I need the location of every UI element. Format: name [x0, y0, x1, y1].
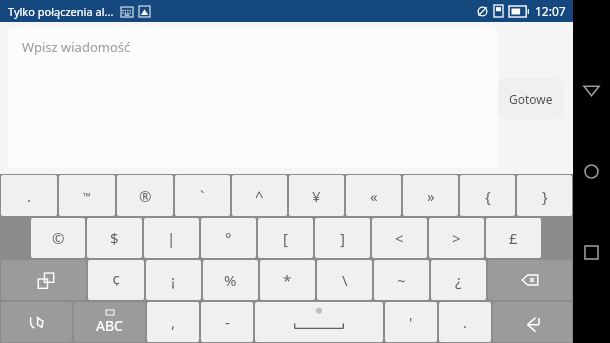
staticText: £	[509, 228, 518, 248]
button[interactable]: Back	[573, 72, 610, 109]
button[interactable]: Wpisz wiadomość	[8, 27, 498, 168]
button[interactable]: Home	[573, 153, 610, 190]
staticText: ®	[139, 186, 152, 206]
button[interactable]: [	[258, 218, 313, 258]
staticText: »	[427, 186, 435, 206]
button[interactable]: Enter	[493, 302, 572, 342]
button[interactable]: ¡	[146, 260, 201, 300]
staticText: `	[200, 186, 205, 206]
button[interactable]: .	[1, 175, 57, 216]
button[interactable]: $	[87, 218, 142, 258]
staticText: ABC	[96, 316, 123, 335]
staticText: °	[225, 228, 232, 248]
button[interactable]: '	[385, 302, 437, 342]
button[interactable]: Switch symbol page	[1, 260, 86, 300]
staticText: ¢	[112, 270, 121, 290]
staticText: |	[167, 228, 176, 248]
staticText: ]	[340, 228, 345, 248]
staticText: 12:07	[535, 3, 566, 19]
staticText: [	[283, 228, 288, 248]
button[interactable]: .	[439, 302, 491, 342]
staticText: >	[452, 228, 461, 248]
staticText: «	[370, 186, 378, 206]
staticText: -	[225, 312, 230, 332]
button[interactable]: |	[144, 218, 199, 258]
button[interactable]: }	[517, 175, 572, 216]
button[interactable]: {	[460, 175, 515, 216]
staticText: {	[485, 186, 491, 206]
staticText: ™	[83, 189, 91, 203]
staticText: <	[395, 228, 404, 248]
button[interactable]: \	[317, 260, 372, 300]
button[interactable]: »	[403, 175, 458, 216]
button[interactable]: Space	[255, 302, 383, 342]
staticText: ~	[397, 270, 406, 290]
button[interactable]: ¥	[289, 175, 344, 216]
staticText: Gotowe	[509, 91, 553, 107]
button[interactable]: ™	[59, 175, 115, 216]
staticText: '	[409, 312, 413, 332]
button[interactable]: ~	[374, 260, 429, 300]
button[interactable]: Handwriting input	[1, 302, 72, 342]
staticText: }	[542, 186, 548, 206]
staticText: ©	[52, 228, 65, 248]
button[interactable]: Recent apps	[573, 234, 610, 271]
button[interactable]: ABC	[74, 302, 145, 342]
staticText: .	[463, 312, 468, 332]
staticText: ¿	[455, 270, 462, 290]
staticText: %	[224, 270, 237, 290]
button[interactable]: «	[346, 175, 401, 216]
button[interactable]: *	[260, 260, 315, 300]
button[interactable]: -	[201, 302, 253, 342]
button[interactable]: Gotowe	[498, 78, 564, 119]
staticText: $	[110, 228, 119, 248]
button[interactable]: <	[372, 218, 427, 258]
button[interactable]: ^	[232, 175, 287, 216]
button[interactable]: ®	[117, 175, 173, 216]
button[interactable]: ©	[31, 218, 85, 258]
button[interactable]: ]	[315, 218, 370, 258]
staticText: .	[27, 186, 32, 206]
button[interactable]: Backspace	[488, 260, 572, 300]
button[interactable]: ,	[147, 302, 199, 342]
staticText: ^	[255, 186, 264, 206]
staticText: ¡	[171, 270, 176, 290]
button[interactable]: `	[175, 175, 230, 216]
staticText: ¥	[312, 186, 321, 206]
button[interactable]: °	[201, 218, 256, 258]
button[interactable]: £	[486, 218, 541, 258]
button[interactable]: ¢	[88, 260, 144, 300]
button[interactable]: %	[203, 260, 258, 300]
button[interactable]: ¿	[431, 260, 486, 300]
staticText: ,	[171, 312, 176, 332]
staticText: \	[342, 270, 348, 290]
staticText: *	[283, 270, 292, 290]
staticText: Tylko połączenia al...	[8, 4, 114, 19]
button[interactable]: >	[429, 218, 484, 258]
staticText: Wpisz wiadomość	[22, 38, 131, 56]
